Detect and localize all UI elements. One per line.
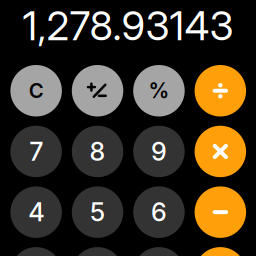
button[interactable]: 6 — [133, 186, 185, 238]
button[interactable]: 2 — [72, 247, 123, 256]
button[interactable]: Minus — [195, 186, 246, 238]
button[interactable]: 8 — [72, 126, 123, 177]
staticText: % — [148, 78, 169, 103]
staticText: 8 — [89, 136, 105, 167]
button[interactable]: C — [10, 65, 62, 116]
button[interactable]: 9 — [133, 126, 185, 177]
staticText: 7 — [29, 136, 43, 167]
button[interactable]: % — [133, 65, 185, 116]
staticText: 4 — [28, 197, 44, 227]
button[interactable]: Multiply — [195, 126, 246, 177]
button[interactable]: 4 — [10, 186, 62, 238]
button[interactable]: Plus — [195, 247, 246, 256]
staticText: 5 — [90, 197, 105, 227]
staticText: 9 — [151, 136, 167, 167]
button[interactable]: 5 — [72, 186, 123, 238]
button[interactable]: Plus minus — [72, 65, 123, 116]
button[interactable]: 1 — [10, 247, 62, 256]
button[interactable]: 3 — [133, 247, 185, 256]
staticText: 6 — [151, 197, 167, 227]
staticText: 1,278.93143 — [22, 2, 233, 50]
button[interactable]: 7 — [10, 126, 62, 177]
staticText: C — [29, 78, 44, 103]
button[interactable]: Divide — [195, 65, 246, 116]
